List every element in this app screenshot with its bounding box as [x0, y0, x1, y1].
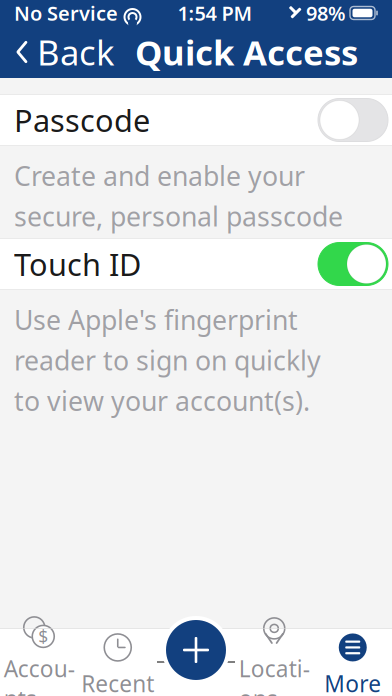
staticText: Quick Access [135, 29, 358, 75]
button[interactable]: Passcode [0, 94, 392, 146]
button[interactable]: Back [0, 26, 123, 78]
staticText: Touch ID [14, 244, 141, 284]
staticText: Accounts [4, 653, 75, 696]
staticText: Create and enable your secure, personal … [14, 158, 343, 315]
button[interactable]: $ [0, 628, 78, 696]
button[interactable]: Locations [235, 628, 313, 696]
button[interactable]: Touch ID [0, 238, 392, 290]
button[interactable]: More [313, 628, 392, 696]
staticText: More [324, 668, 381, 696]
staticText: Back [37, 29, 115, 75]
staticText: 1:54 PM [177, 0, 252, 26]
staticText: Recent [81, 668, 154, 696]
staticText: Passcode [14, 100, 150, 140]
staticText: No Service [14, 0, 118, 26]
staticText: $ [38, 625, 48, 648]
button[interactable]: Add [161, 615, 231, 685]
staticText: Use Apple's fingerprint reader to sign o… [14, 302, 321, 418]
staticText: 98% [306, 0, 346, 26]
staticText: Locations [239, 653, 310, 696]
button[interactable]: Recent [78, 628, 157, 696]
